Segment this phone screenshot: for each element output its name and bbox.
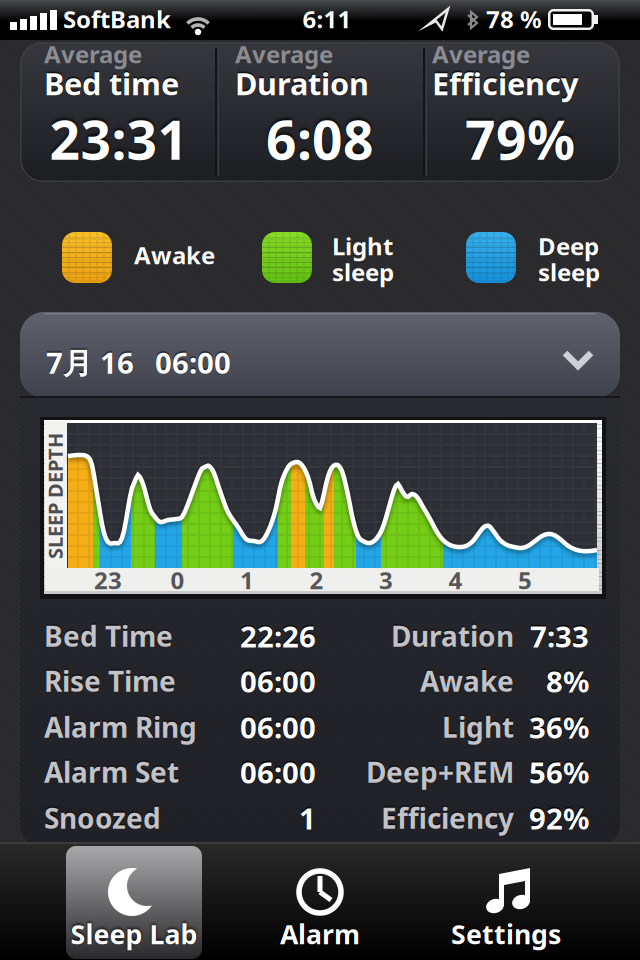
staticText: 1 — [240, 564, 254, 596]
staticText: Average — [44, 38, 142, 70]
button[interactable]: Alarm — [252, 846, 388, 959]
staticText: 06:00 — [240, 752, 316, 791]
staticText: Sleep Lab — [70, 916, 197, 952]
staticText: 78 % — [486, 3, 542, 35]
staticText: 06:00 — [240, 661, 316, 700]
staticText: Rise Time — [44, 662, 176, 700]
staticText: sleep — [332, 256, 394, 288]
button[interactable]: Settings — [438, 846, 574, 959]
staticText: Average — [235, 38, 333, 70]
staticText: 92% — [529, 798, 589, 837]
staticText: Deep — [538, 230, 599, 262]
staticText: Efficiency — [432, 63, 579, 104]
staticText: Duration — [391, 617, 514, 655]
staticText: 7月 16 — [46, 343, 134, 382]
staticText: 23:31 — [49, 104, 188, 174]
staticText: SLEEP DEPTH — [0, 483, 118, 509]
staticText: Alarm Set — [44, 753, 179, 791]
staticText: Light — [332, 230, 393, 262]
button[interactable]: Sleep Lab — [66, 846, 202, 959]
staticText: Awake — [134, 239, 215, 271]
staticText: 2 — [309, 564, 323, 596]
staticText: 56% — [529, 752, 589, 791]
staticText: 5 — [518, 564, 532, 596]
staticText: Average — [432, 38, 530, 70]
staticText: Deep+REM — [366, 753, 514, 791]
staticText: Awake — [420, 662, 514, 700]
button[interactable]: 7月 16 — [20, 312, 620, 398]
staticText: 0 — [170, 564, 184, 596]
staticText: 22:26 — [240, 616, 316, 655]
staticText: 6:11 — [302, 3, 351, 35]
staticText: 8% — [546, 661, 589, 700]
staticText: 6:08 — [266, 104, 374, 174]
staticText: 06:00 — [155, 343, 231, 382]
staticText: 36% — [529, 707, 589, 746]
staticText: sleep — [538, 256, 600, 288]
staticText: 1 — [299, 798, 316, 837]
staticText: 3 — [379, 564, 393, 596]
staticText: 06:00 — [240, 707, 316, 746]
staticText: Duration — [235, 63, 369, 104]
staticText: SoftBank — [63, 3, 171, 35]
staticText: 79% — [465, 104, 575, 174]
staticText: Light — [442, 708, 514, 746]
staticText: 7:33 — [530, 616, 589, 655]
staticText: Bed time — [44, 63, 179, 104]
staticText: Efficiency — [381, 799, 514, 837]
staticText: Alarm — [280, 916, 360, 952]
staticText: Bed Time — [44, 617, 173, 655]
staticText: Alarm Ring — [44, 708, 197, 746]
staticText: Settings — [451, 916, 561, 952]
staticText: Snoozed — [44, 799, 161, 837]
staticText: 23 — [94, 564, 122, 596]
staticText: 4 — [448, 564, 462, 596]
